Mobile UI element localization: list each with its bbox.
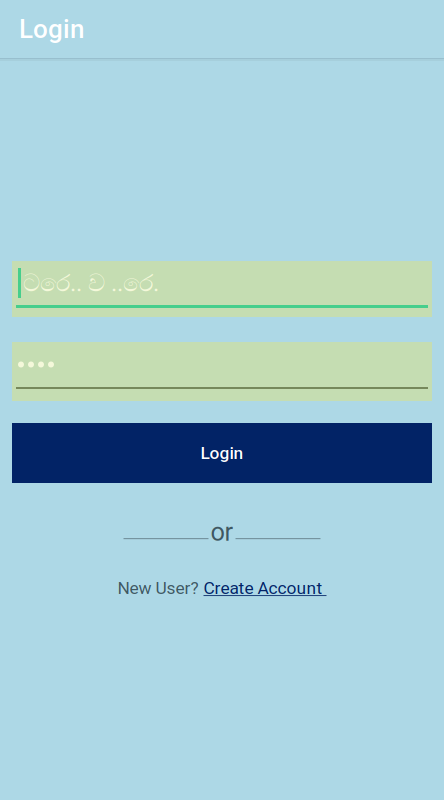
- staticText: ටරෙ.. ව ..රෙ.: [23, 269, 159, 297]
- staticText: or: [210, 517, 233, 547]
- staticText: New User?: [117, 578, 198, 598]
- staticText: Create Account: [203, 578, 326, 598]
- staticText: Login: [19, 14, 84, 44]
- button[interactable]: New User?: [117, 575, 326, 601]
- staticText: Login: [200, 443, 243, 463]
- button[interactable]: Login: [0, 423, 444, 483]
